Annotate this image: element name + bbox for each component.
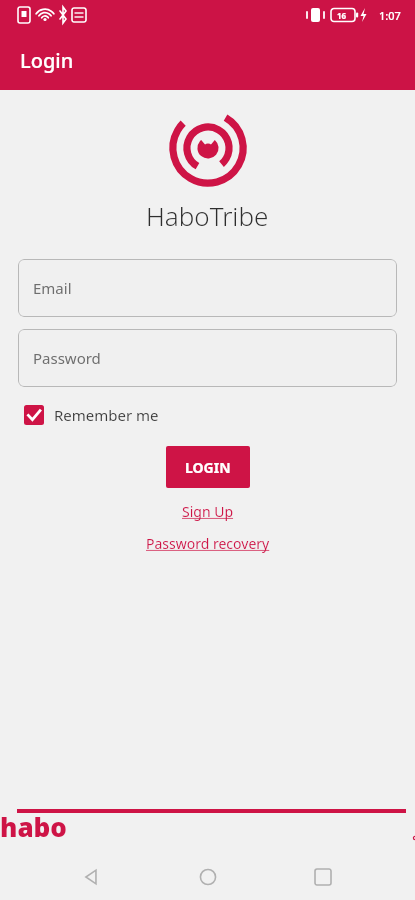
button[interactable]: LOGIN (166, 446, 250, 488)
button[interactable]: Home (184, 854, 232, 900)
staticText: Email (33, 278, 72, 298)
staticText: Sign Up (182, 502, 234, 521)
staticText: 16 (337, 10, 347, 21)
staticText: HaboTribe (146, 198, 269, 233)
button[interactable]: Password (18, 329, 397, 387)
staticText: 1:07 (379, 8, 401, 23)
button[interactable]: Back (68, 854, 116, 900)
button[interactable]: Sign Up (176, 500, 240, 523)
staticText: Remember me (54, 405, 159, 425)
staticText: Login (20, 47, 74, 74)
button[interactable]: Remember me (22, 401, 161, 429)
button[interactable]: Recent apps (299, 854, 347, 900)
staticText: Password (33, 348, 101, 368)
staticText: habo (0, 809, 67, 844)
button[interactable]: Password recovery (140, 532, 276, 555)
button[interactable]: Email (18, 259, 397, 317)
staticText: LOGIN (185, 458, 231, 477)
staticText: Password recovery (146, 534, 270, 553)
